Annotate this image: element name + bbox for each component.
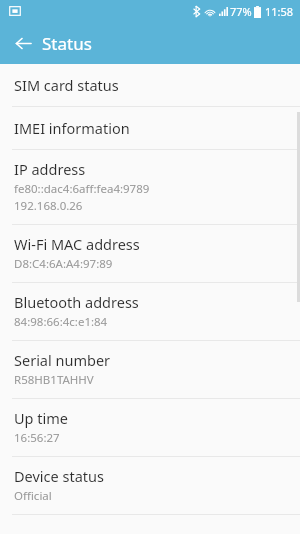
- staticText: 84:98:66:4c:e1:84: [14, 314, 108, 330]
- staticText: Serial number: [14, 350, 111, 370]
- staticText: SIM card status: [14, 75, 119, 95]
- button[interactable]: Bluetooth address: [0, 283, 300, 340]
- staticText: fe80::dac4:6aff:fea4:9789: [14, 181, 150, 197]
- staticText: Official: [14, 488, 52, 504]
- button[interactable]: IMEI information: [0, 107, 300, 149]
- staticText: Device status: [14, 466, 104, 486]
- button[interactable]: Serial number: [0, 341, 300, 398]
- staticText: D8:C4:6A:A4:97:89: [14, 256, 113, 272]
- staticText: 192.168.0.26: [14, 198, 83, 214]
- button[interactable]: Device status: [0, 457, 300, 514]
- staticText: IP address: [14, 159, 86, 179]
- staticText: R58HB1TAHHV: [14, 372, 94, 388]
- button[interactable]: Back: [8, 28, 38, 58]
- staticText: 16:56:27: [14, 430, 60, 446]
- staticText: Wi-Fi MAC address: [14, 234, 140, 254]
- staticText: Up time: [14, 408, 68, 428]
- button[interactable]: Wi-Fi MAC address: [0, 225, 300, 282]
- button[interactable]: IP address: [0, 150, 300, 224]
- staticText: 11:58: [265, 4, 294, 19]
- staticText: 77%: [230, 4, 252, 19]
- button[interactable]: SIM card status: [0, 64, 300, 106]
- staticText: Bluetooth address: [14, 292, 139, 312]
- button[interactable]: Up time: [0, 399, 300, 456]
- staticText: IMEI information: [14, 118, 130, 138]
- staticText: Status: [42, 32, 92, 55]
